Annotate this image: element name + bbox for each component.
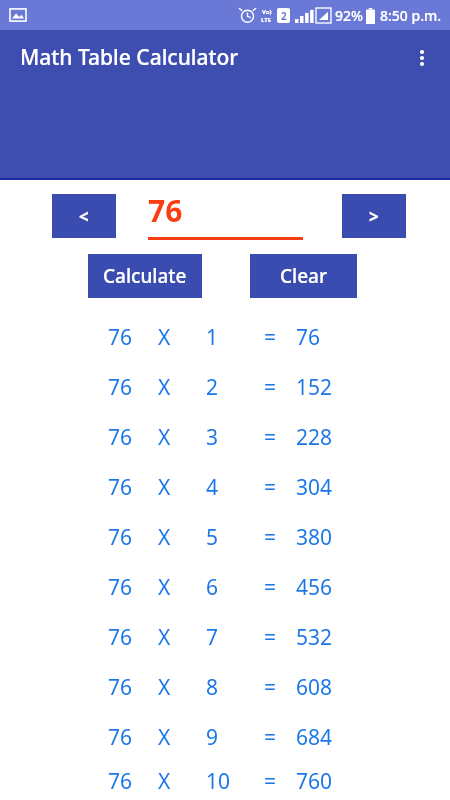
staticText: 4 [206, 473, 219, 502]
staticText: 76 [108, 573, 133, 602]
staticText: 2 [281, 9, 287, 23]
button[interactable]: More options [400, 36, 444, 80]
button[interactable]: Clear [250, 254, 357, 298]
staticText: 6 [206, 573, 219, 602]
staticText: 76 [108, 373, 133, 402]
staticText: X [158, 323, 171, 352]
staticText: Vo) [262, 8, 272, 16]
staticText: 76 [108, 673, 133, 702]
button[interactable]: 76 [0, 462, 450, 512]
staticText: 608 [296, 673, 333, 702]
staticText: 532 [296, 623, 333, 652]
staticText: Clear [280, 263, 328, 289]
button[interactable]: 76 [0, 712, 450, 762]
staticText: > [369, 205, 379, 228]
staticText: = [264, 623, 277, 652]
button[interactable]: 76 [0, 762, 450, 800]
staticText: Calculate [103, 263, 187, 289]
staticText: = [264, 423, 277, 452]
staticText: 76 [148, 190, 183, 231]
staticText: X [158, 767, 171, 796]
staticText: X [158, 373, 171, 402]
staticText: Math Table Calculator [20, 43, 239, 72]
button[interactable]: Previous [52, 194, 116, 238]
button[interactable]: 76 [0, 312, 450, 362]
staticText: = [264, 767, 277, 796]
staticText: = [264, 473, 277, 502]
staticText: 7 [206, 623, 219, 652]
staticText: 152 [296, 373, 333, 402]
staticText: X [158, 723, 171, 752]
button[interactable]: Calculate [88, 254, 202, 298]
staticText: = [264, 373, 277, 402]
staticText: = [264, 323, 277, 352]
staticText: 8:50 p.m. [380, 6, 442, 25]
staticText: 76 [108, 723, 133, 752]
staticText: 684 [296, 723, 333, 752]
staticText: 76 [108, 623, 133, 652]
staticText: 9 [206, 723, 219, 752]
staticText: 10 [206, 767, 231, 796]
staticText: = [264, 573, 277, 602]
staticText: 76 [108, 767, 133, 796]
staticText: 760 [296, 767, 333, 796]
staticText: < [79, 205, 89, 228]
button[interactable]: Next [342, 194, 406, 238]
staticText: 76 [108, 473, 133, 502]
staticText: 3 [206, 423, 219, 452]
staticText: 304 [296, 473, 333, 502]
staticText: X [158, 623, 171, 652]
button[interactable]: 76 [0, 412, 450, 462]
staticText: 2 [206, 373, 219, 402]
staticText: 380 [296, 523, 333, 552]
staticText: 1 [206, 323, 219, 352]
staticText: X [158, 573, 171, 602]
staticText: X [158, 523, 171, 552]
staticText: 456 [296, 573, 333, 602]
staticText: 8 [206, 673, 219, 702]
staticText: 228 [296, 423, 333, 452]
button[interactable]: 76 [0, 612, 450, 662]
staticText: = [264, 673, 277, 702]
button[interactable]: 76 [0, 362, 450, 412]
button[interactable]: 76 [0, 512, 450, 562]
staticText: = [264, 723, 277, 752]
button[interactable]: 76 [0, 562, 450, 612]
staticText: 92% [335, 6, 363, 25]
staticText: 76 [296, 323, 321, 352]
staticText: LTE [261, 16, 272, 24]
staticText: = [264, 523, 277, 552]
staticText: 76 [108, 523, 133, 552]
staticText: X [158, 673, 171, 702]
button[interactable]: 76 [0, 662, 450, 712]
staticText: X [158, 473, 171, 502]
staticText: X [158, 423, 171, 452]
staticText: 5 [206, 523, 219, 552]
staticText: 76 [108, 323, 133, 352]
staticText: 76 [108, 423, 133, 452]
